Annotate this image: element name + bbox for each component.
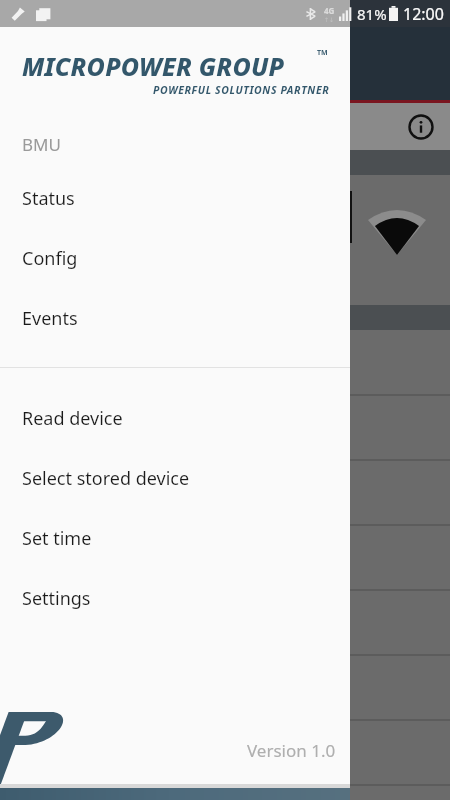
button[interactable]: Status: [0, 168, 350, 228]
staticText: Version 1.0: [247, 739, 336, 762]
staticText: 81%: [357, 4, 387, 24]
button[interactable]: Info: [404, 110, 438, 144]
staticText: POWERFUL SOLUTIONS PARTNER: [153, 83, 330, 97]
staticText: Set time: [22, 526, 92, 551]
button[interactable]: Select stored device: [0, 448, 350, 508]
staticText: Status: [22, 186, 75, 211]
staticText: 4G: [324, 5, 335, 16]
staticText: Config: [22, 246, 78, 271]
button[interactable]: Read device: [0, 388, 350, 448]
staticText: 12:00: [403, 3, 444, 25]
staticText: Settings: [22, 586, 91, 611]
button[interactable]: Config: [0, 228, 350, 288]
staticText: MICROPOWER GROUP: [22, 49, 285, 83]
staticText: Read device: [22, 406, 123, 431]
staticText: Select stored device: [22, 466, 190, 491]
staticText: Events: [22, 306, 78, 331]
staticText: TM: [317, 48, 328, 58]
button[interactable]: Settings: [0, 568, 350, 628]
button[interactable]: Set time: [0, 508, 350, 568]
staticText: BMU: [22, 133, 61, 156]
button[interactable]: Events: [0, 288, 350, 348]
staticText: ↑↓: [324, 16, 335, 23]
